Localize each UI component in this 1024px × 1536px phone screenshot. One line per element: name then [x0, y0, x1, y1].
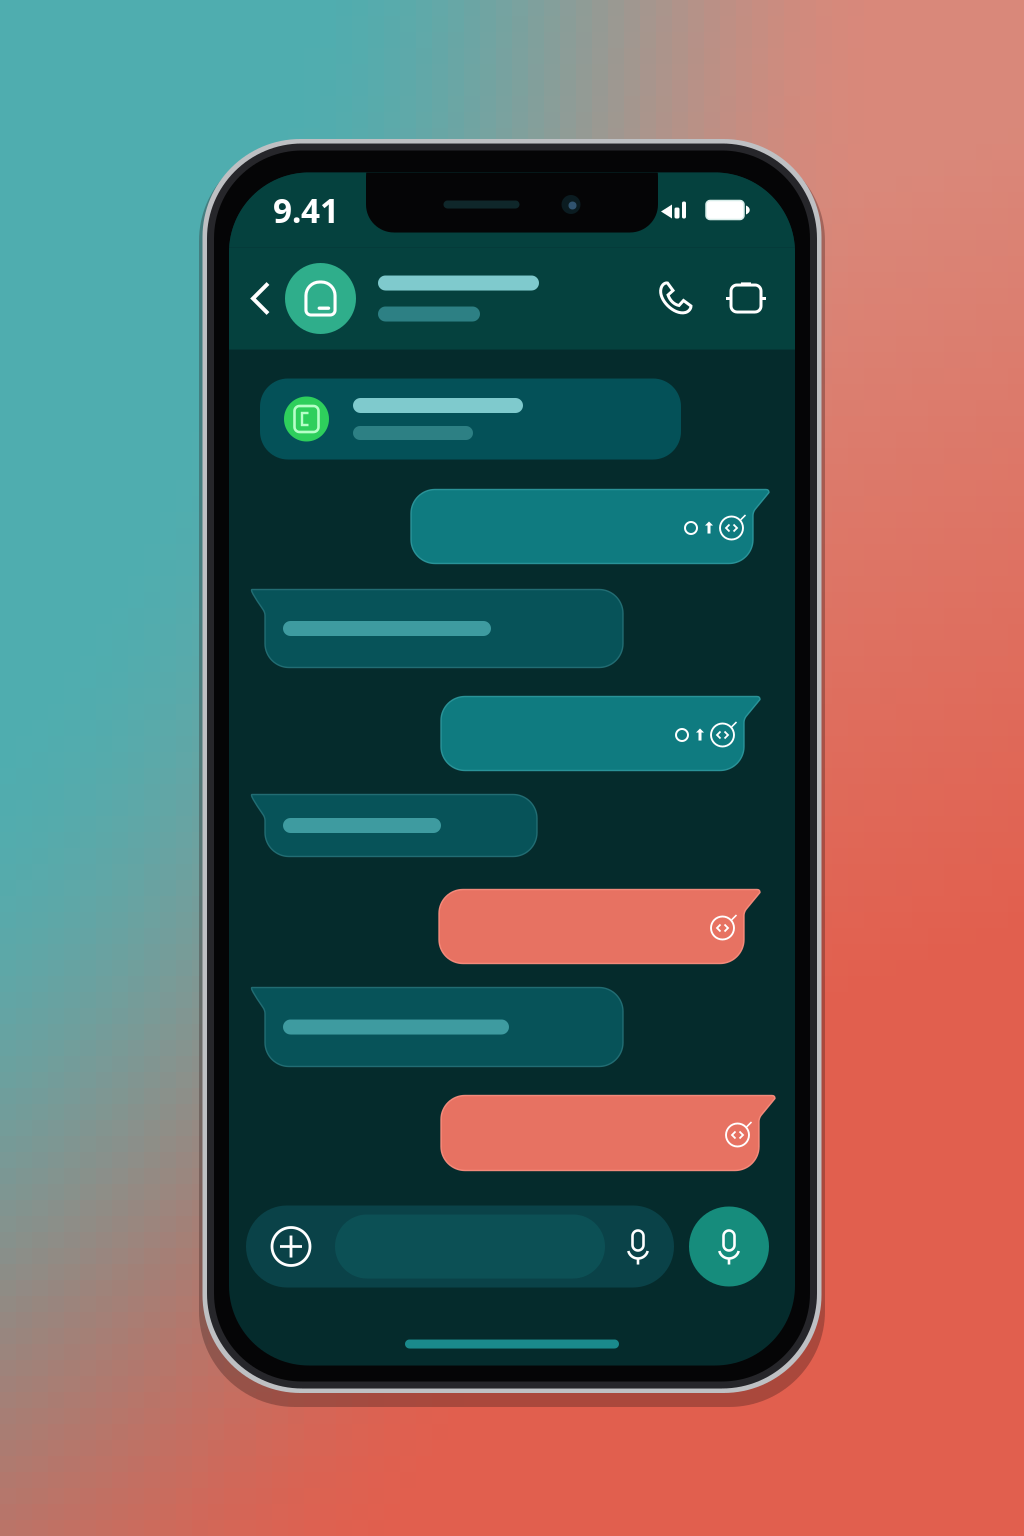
button[interactable]: Dictate — [624, 1227, 652, 1265]
button[interactable]: Record voice message — [689, 1206, 769, 1286]
button[interactable]: Contact profile — [285, 263, 356, 334]
button[interactable]: Attach — [269, 1224, 313, 1268]
button[interactable]: Voice call — [655, 279, 695, 317]
staticText: 9.41 — [273, 188, 339, 232]
button[interactable]: Video call — [725, 279, 767, 317]
button[interactable]: Message — [335, 1214, 605, 1278]
button[interactable]: Back — [243, 270, 279, 326]
